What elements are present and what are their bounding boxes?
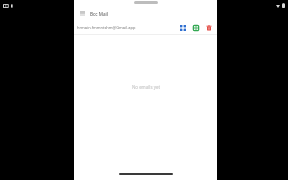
button[interactable]: Home (119, 173, 173, 175)
button[interactable]: Refresh (191, 23, 200, 32)
button[interactable]: Menu (74, 7, 217, 20)
button[interactable]: Delete (204, 23, 213, 32)
staticText: No emails yet (132, 84, 160, 90)
button[interactable]: Sync contacts (178, 23, 187, 32)
staticText: hrmain.fmmntshm@Gmail.app (77, 25, 136, 30)
button[interactable]: hrmain.fmmntshm@Gmail.app (77, 25, 178, 30)
staticText: Bcc Mail (90, 11, 109, 17)
button[interactable]: Menu (78, 9, 87, 18)
